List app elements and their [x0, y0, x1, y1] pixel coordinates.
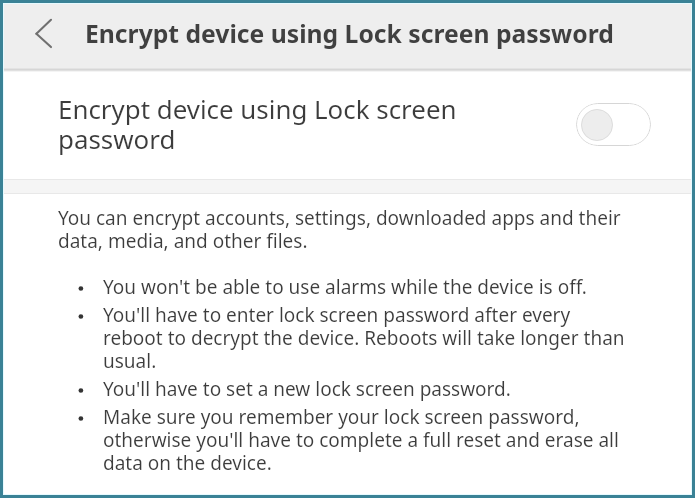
- staticText: Make sure you remember your lock screen …: [103, 404, 628, 476]
- button[interactable]: Encrypt device using Lock screen passwor…: [4, 72, 691, 179]
- staticText: Encrypt device using Lock screen passwor…: [58, 91, 468, 156]
- staticText: You'll have to enter lock screen passwor…: [103, 302, 628, 374]
- button[interactable]: Navigate up: [4, 4, 66, 68]
- staticText: You'll have to set a new lock screen pas…: [103, 376, 511, 402]
- staticText: You can encrypt accounts, settings, down…: [58, 205, 628, 254]
- staticText: Encrypt device using Lock screen passwor…: [85, 17, 614, 51]
- staticText: You won't be able to use alarms while th…: [103, 274, 587, 300]
- button[interactable]: Encrypt device, off: [576, 103, 651, 146]
